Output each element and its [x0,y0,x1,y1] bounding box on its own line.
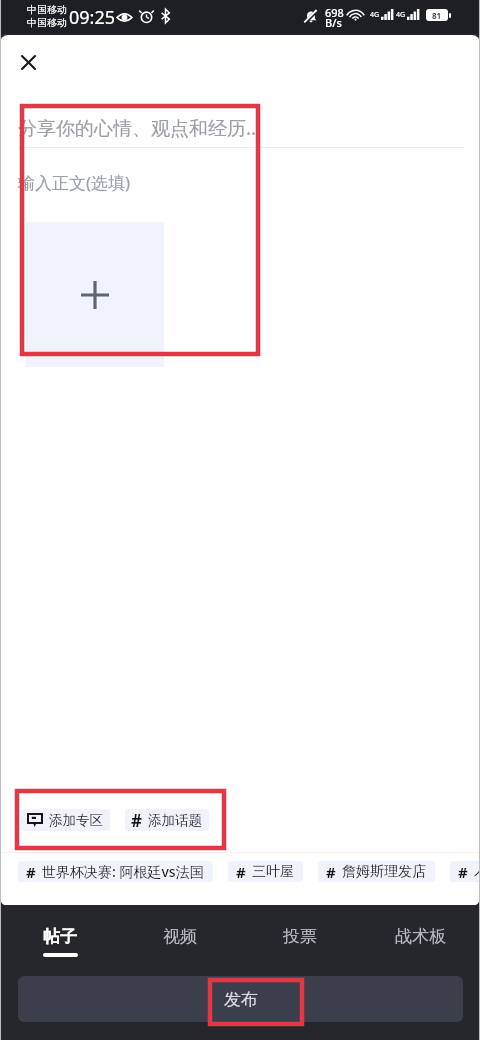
button[interactable]: 视频 [120,905,240,967]
staticText: 詹姆斯理发店 [342,863,426,881]
staticText: 09:25 [69,5,116,30]
button[interactable]: # [125,809,209,831]
staticText: 人物 [474,861,480,882]
staticText: 输入正文(选填) [18,171,131,194]
button[interactable]: 帖子 [0,905,120,967]
staticText: 4G [370,10,380,20]
staticText: 添加话题 [148,812,202,829]
staticText: 添加专区 [49,812,103,829]
button[interactable]: 添加专区 [21,809,110,831]
staticText: # [131,809,142,831]
button[interactable]: # [318,861,435,882]
staticText: # [26,862,36,882]
button[interactable]: # [450,861,480,882]
button[interactable]: # [18,861,213,882]
staticText: # [458,862,468,882]
staticText: 世界杯决赛: 阿根廷vs法国 [42,862,204,881]
button[interactable]: 投票 [240,905,360,967]
staticText: 4G [396,10,406,20]
staticText: 81 [432,10,442,21]
staticText: 中国移动 [27,16,67,29]
staticText: B/s [325,15,342,30]
staticText: 战术板 [395,926,446,947]
button[interactable]: 战术板 [360,905,480,967]
staticText: 698 [325,5,344,20]
button[interactable]: 发布 [18,976,463,1022]
button[interactable]: Close [6,40,50,84]
staticText: # [326,862,336,882]
staticText: # [236,862,246,882]
staticText: 发布 [224,989,258,1010]
staticText: 中国移动 [27,3,67,16]
staticText: 三叶屋 [252,863,294,881]
button[interactable]: # [228,861,303,882]
staticText: 视频 [163,926,197,947]
staticText: 帖子 [43,926,77,947]
button[interactable]: Add image [26,222,164,367]
staticText: 分享你的心情、观点和经历... [18,115,262,141]
staticText: 投票 [283,926,317,947]
